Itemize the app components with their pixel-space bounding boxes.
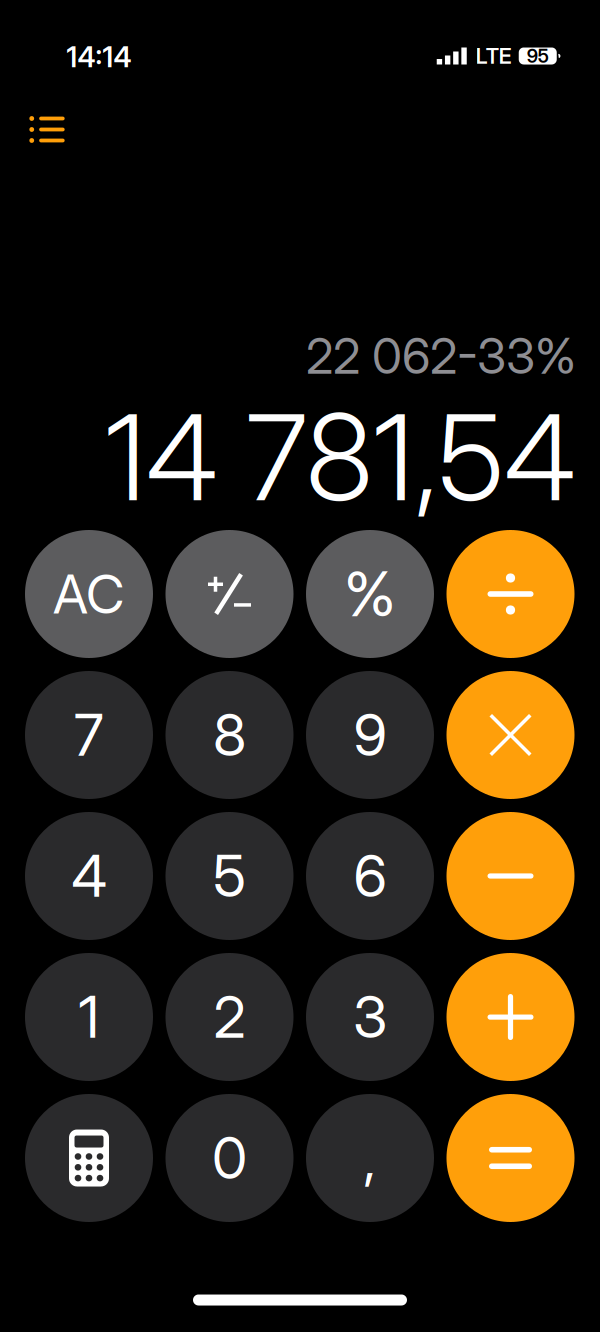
staticText: 7	[74, 700, 104, 770]
button[interactable]: 4	[25, 812, 153, 940]
staticText: AC	[53, 562, 125, 626]
staticText: 9	[353, 700, 386, 770]
staticText: 14:14	[66, 40, 131, 74]
button[interactable]: %	[306, 530, 434, 658]
staticText: 22 062-33%	[306, 327, 576, 385]
button[interactable]: 8	[165, 671, 293, 799]
button[interactable]: 5	[165, 812, 293, 940]
button[interactable]: History	[15, 102, 79, 157]
button[interactable]: 0	[165, 1094, 293, 1222]
staticText: 95	[527, 45, 549, 67]
button[interactable]: Multiply	[446, 671, 574, 799]
staticText: 3	[353, 982, 387, 1052]
button[interactable]: Equals	[446, 1094, 574, 1222]
staticText: 6	[353, 841, 386, 911]
button[interactable]: Subtract	[446, 812, 574, 940]
staticText: 8	[213, 700, 246, 770]
staticText: %	[344, 557, 396, 631]
button[interactable]: Add	[446, 953, 574, 1081]
staticText: LTE	[476, 43, 512, 69]
button[interactable]: Plus minus	[165, 530, 293, 658]
staticText: 0	[212, 1123, 247, 1193]
button[interactable]: AC	[25, 530, 153, 658]
staticText: ,	[363, 1123, 376, 1193]
button[interactable]: ,	[306, 1094, 434, 1222]
button[interactable]: Divide	[446, 530, 574, 658]
button[interactable]: 2	[165, 953, 293, 1081]
button[interactable]: 1	[25, 953, 153, 1081]
button[interactable]: 7	[25, 671, 153, 799]
staticText: 4	[71, 841, 106, 911]
staticText: 1	[78, 982, 99, 1052]
staticText: 5	[213, 841, 246, 911]
button[interactable]: 9	[306, 671, 434, 799]
button[interactable]: 3	[306, 953, 434, 1081]
staticText: 14 781,54	[105, 385, 576, 529]
staticText: 2	[213, 982, 245, 1052]
button[interactable]: Calculator	[25, 1094, 153, 1222]
button[interactable]: 6	[306, 812, 434, 940]
